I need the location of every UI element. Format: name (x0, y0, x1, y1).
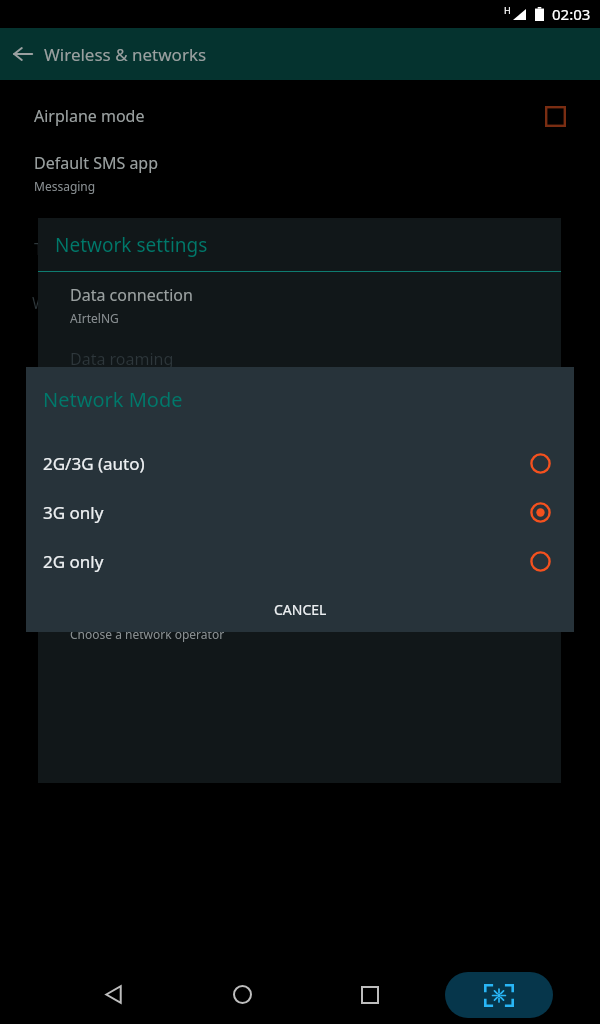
staticText: Data connection (70, 284, 193, 306)
staticText: Default SMS app (34, 152, 159, 174)
button[interactable]: Screenshot (444, 965, 554, 1024)
staticText: 2G only (43, 550, 104, 573)
staticText: Messaging (34, 178, 96, 194)
button[interactable]: Default SMS app (0, 152, 600, 194)
staticText: Network Mode (43, 386, 183, 413)
staticText: 3G only (43, 501, 104, 524)
button[interactable]: Home (207, 965, 277, 1024)
staticText: T (34, 238, 43, 260)
staticText: W (32, 292, 47, 314)
button[interactable]: Data connection (38, 284, 561, 326)
staticText: Network settings (55, 232, 208, 258)
staticText: 02:03 (552, 4, 591, 24)
staticText: Choose a network operator (70, 626, 225, 642)
button[interactable]: Back (78, 965, 148, 1024)
staticText: CANCEL (274, 600, 327, 619)
button[interactable]: Recent apps (335, 965, 405, 1024)
button[interactable]: Network operators (38, 600, 561, 642)
button[interactable]: 3G only (26, 488, 574, 537)
button[interactable]: Airplane mode (0, 92, 600, 140)
staticText: H (504, 4, 511, 16)
button[interactable]: Data roaming (38, 348, 561, 370)
button[interactable]: 2G only (26, 537, 574, 586)
button[interactable]: CANCEL (254, 591, 347, 628)
staticText: AIrtelNG (70, 310, 119, 326)
button[interactable]: Back (2, 33, 44, 75)
staticText: Data roaming (70, 348, 174, 370)
staticText: 2G/3G (auto) (43, 452, 145, 475)
button[interactable]: 2G/3G (auto) (26, 439, 574, 488)
staticText: Airplane mode (34, 105, 145, 127)
staticText: Wireless & networks (44, 43, 207, 66)
